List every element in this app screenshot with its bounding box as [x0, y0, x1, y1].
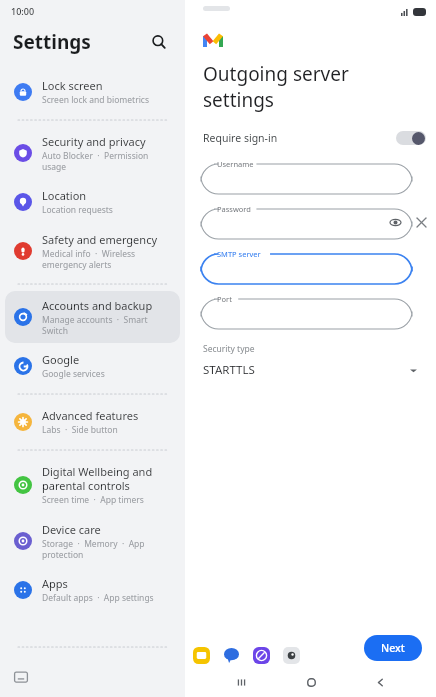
staticText: Screen lock and biometrics — [42, 94, 149, 106]
staticText: Google services — [42, 368, 105, 380]
staticText: SMTP server — [217, 249, 261, 259]
button[interactable]: Show password — [388, 215, 402, 229]
staticText: Accounts and backup — [42, 298, 153, 313]
staticText: Require sign-in — [203, 131, 278, 145]
staticText: Safety and emergency — [42, 232, 158, 247]
staticText: Google — [42, 352, 80, 367]
button[interactable]: Safety and emergency — [5, 225, 180, 277]
staticText: STARTTLS — [203, 362, 255, 378]
staticText: Manage accounts · Smart Switch — [42, 314, 172, 336]
staticText: Auto Blocker · Permission usage — [42, 150, 172, 172]
button[interactable]: Google — [5, 345, 180, 387]
staticText: Lock screen — [42, 78, 103, 93]
staticText: Advanced features — [42, 408, 139, 423]
button[interactable]: Device care — [5, 515, 180, 567]
staticText: Apps — [42, 576, 68, 591]
button[interactable]: Port — [201, 294, 412, 329]
staticText: Next — [381, 641, 405, 655]
button[interactable]: App — [251, 645, 271, 665]
button[interactable]: Next — [364, 635, 422, 661]
button[interactable]: Location — [5, 181, 180, 223]
staticText: Storage · Memory · App protection — [42, 538, 172, 560]
button[interactable]: Search settings — [146, 29, 172, 55]
button[interactable]: Recents — [11, 667, 31, 687]
button[interactable]: Lock screen — [5, 71, 180, 113]
staticText: Port — [217, 294, 232, 304]
button[interactable]: App — [281, 645, 301, 665]
button[interactable]: Clear — [412, 213, 430, 231]
staticText: Screen time · App timers — [42, 494, 144, 506]
button[interactable]: Apps — [5, 569, 180, 611]
staticText: Security type — [203, 343, 255, 355]
staticText: Username — [217, 159, 254, 169]
button[interactable]: Security and privacy — [5, 127, 180, 179]
button[interactable]: Home — [298, 669, 324, 695]
staticText: Device care — [42, 522, 101, 537]
button[interactable]: Accounts and backup — [5, 291, 180, 343]
staticText: Settings — [13, 29, 91, 55]
button[interactable]: App — [221, 645, 241, 665]
button[interactable]: Digital Wellbeing and parental controls — [5, 457, 180, 513]
button[interactable]: Recents — [228, 669, 254, 695]
staticText: Location requests — [42, 204, 113, 216]
staticText: Password — [217, 204, 251, 214]
staticText: Location — [42, 188, 87, 203]
staticText: 10:00 — [11, 5, 35, 17]
staticText: Default apps · App settings — [42, 592, 154, 604]
staticText: Security and privacy — [42, 134, 146, 149]
button[interactable]: App — [191, 645, 211, 665]
staticText: Medical info · Wireless emergency alerts — [42, 248, 172, 270]
button[interactable]: Advanced features — [5, 401, 180, 443]
staticText: Outgoing server settings — [203, 61, 424, 113]
button[interactable]: Back — [367, 669, 393, 695]
button[interactable]: Security type — [185, 343, 436, 378]
button[interactable]: Username — [201, 159, 412, 194]
button[interactable]: Require sign-in — [185, 131, 436, 145]
staticText: Labs · Side button — [42, 424, 118, 436]
staticText: Digital Wellbeing and parental controls — [42, 464, 172, 493]
button[interactable]: SMTP server — [201, 249, 412, 284]
button[interactable]: Password — [201, 204, 412, 239]
